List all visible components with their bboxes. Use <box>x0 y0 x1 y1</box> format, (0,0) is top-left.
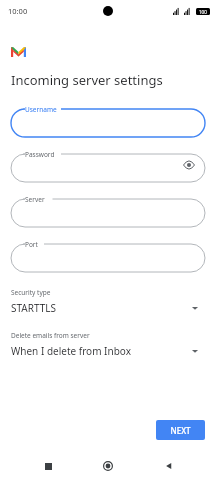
staticText: Password <box>25 150 55 159</box>
staticText: When I delete from Inbox <box>11 344 191 358</box>
staticText: 10:00 <box>8 6 28 16</box>
staticText: Security type <box>11 288 51 297</box>
button[interactable]: Recent apps <box>35 453 61 479</box>
button[interactable]: Back <box>156 453 182 479</box>
staticText: Username <box>25 105 57 114</box>
staticText: Incoming server settings <box>11 71 163 89</box>
button[interactable]: Delete emails from server <box>11 329 205 360</box>
staticText: NEXT <box>170 425 191 436</box>
button[interactable]: Home <box>95 453 121 479</box>
button[interactable]: Show password <box>181 157 197 173</box>
button[interactable]: NEXT <box>156 420 205 440</box>
staticText: Server <box>25 195 45 204</box>
staticText: 100 <box>199 9 207 15</box>
button[interactable]: Security type <box>11 286 205 317</box>
staticText: Port <box>25 240 38 249</box>
staticText: STARTTLS <box>11 301 191 315</box>
staticText: Delete emails from server <box>11 331 90 340</box>
